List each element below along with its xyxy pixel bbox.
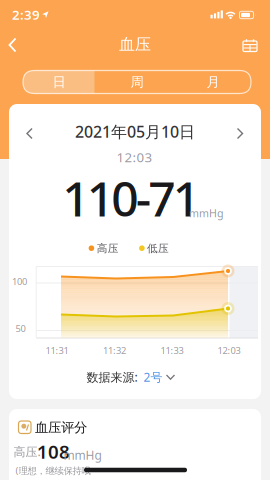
staticText: 50: [15, 322, 25, 335]
button[interactable]: Next day: [233, 126, 247, 140]
staticText: 2021年05月10日: [75, 121, 195, 142]
staticText: 数据来源:: [86, 369, 140, 385]
staticText: 周: [130, 74, 143, 90]
button[interactable]: Back: [6, 37, 18, 53]
staticText: 110-71: [62, 166, 200, 230]
staticText: 血压: [119, 35, 151, 54]
staticText: 12:03: [116, 148, 152, 166]
staticText: 高压: [97, 242, 119, 255]
staticText: 低压: [147, 242, 169, 255]
staticText: 日: [52, 74, 65, 90]
button[interactable]: 日: [21, 70, 97, 93]
staticText: 11:33: [160, 344, 183, 357]
button[interactable]: 周: [99, 70, 175, 93]
button[interactable]: 月: [175, 70, 251, 93]
staticText: 2:39: [12, 6, 40, 23]
staticText: 月: [206, 74, 219, 90]
staticText: (理想，继续保持哦: [15, 464, 90, 477]
staticText: 11:32: [103, 344, 126, 357]
button[interactable]: Calendar: [240, 37, 260, 53]
button[interactable]: 数据来源:: [86, 369, 176, 385]
staticText: 100: [12, 275, 27, 288]
staticText: 11:31: [45, 344, 68, 357]
staticText: mmHg: [63, 447, 101, 463]
staticText: mmHg: [189, 206, 224, 220]
staticText: 高压:: [13, 443, 40, 459]
staticText: 2号: [143, 369, 162, 385]
staticText: 血压评分: [35, 419, 87, 436]
staticText: 108: [37, 439, 70, 464]
staticText: 12:03: [217, 344, 240, 357]
button[interactable]: Previous day: [22, 126, 36, 140]
